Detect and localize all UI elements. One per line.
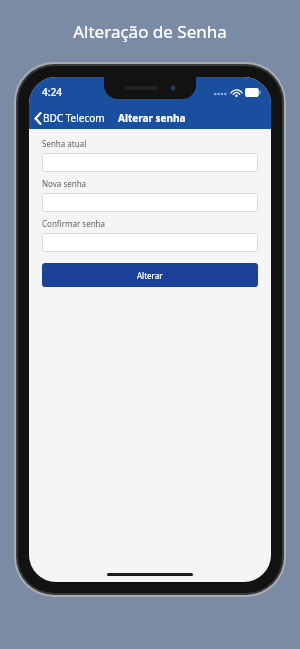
button[interactable] xyxy=(42,153,258,172)
staticText: BDC Telecom xyxy=(43,111,105,125)
button[interactable] xyxy=(42,233,258,252)
staticText: Confirmar senha xyxy=(42,218,106,229)
staticText: Alterar senha xyxy=(118,111,186,125)
staticText: Alteração de Senha xyxy=(73,20,227,43)
staticText: Nova senha xyxy=(42,178,87,189)
staticText: Senha atual xyxy=(42,138,87,149)
staticText: 4:24 xyxy=(42,85,62,99)
button[interactable]: Alterar xyxy=(42,263,258,287)
button[interactable]: Back xyxy=(29,109,109,127)
staticText: Alterar xyxy=(137,270,163,281)
button[interactable] xyxy=(42,193,258,212)
other: Back xyxy=(34,112,42,125)
